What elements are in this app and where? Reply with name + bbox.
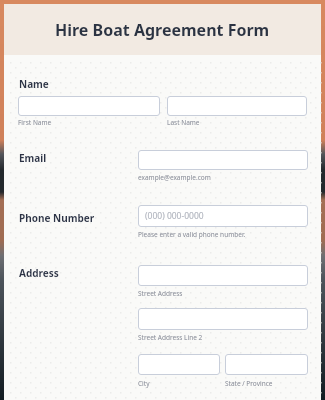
staticText: First Name xyxy=(18,118,52,127)
button[interactable] xyxy=(225,354,308,375)
staticText: City xyxy=(138,379,150,388)
staticText: Street Address Line 2 xyxy=(138,333,203,342)
staticText: Email xyxy=(19,151,47,165)
button[interactable]: (000) 000-0000 xyxy=(138,205,308,227)
staticText: State / Province xyxy=(225,379,273,388)
staticText: Phone Number xyxy=(19,211,95,225)
staticText: (000) 000-0000 xyxy=(145,210,204,222)
button[interactable] xyxy=(138,265,308,286)
button[interactable] xyxy=(18,96,160,116)
staticText: Name xyxy=(19,77,49,91)
button[interactable] xyxy=(167,96,307,116)
staticText: Hire Boat Agreement Form xyxy=(55,19,270,41)
staticText: Please enter a valid phone number. xyxy=(138,230,246,239)
staticText: example@example.com xyxy=(138,173,211,182)
staticText: Street Address xyxy=(138,289,183,298)
button[interactable] xyxy=(138,308,308,330)
staticText: Last Name xyxy=(167,118,200,127)
button[interactable] xyxy=(138,354,220,375)
staticText: Address xyxy=(19,266,59,280)
button[interactable] xyxy=(138,150,308,170)
